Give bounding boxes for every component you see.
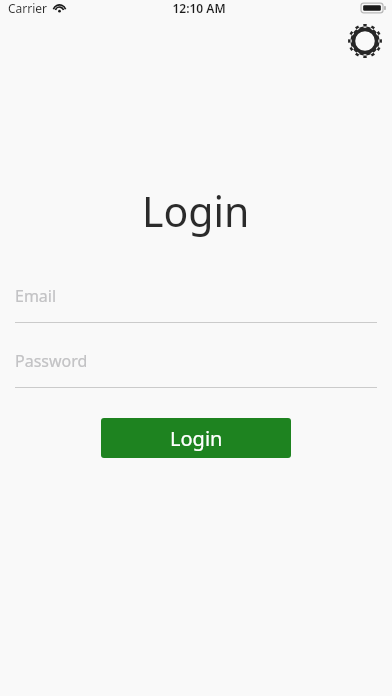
button[interactable]: Login [101, 418, 291, 458]
button[interactable]: Settings [345, 21, 385, 61]
staticText: Email [15, 285, 57, 307]
staticText: Login [170, 425, 223, 452]
staticText: Login [142, 183, 250, 239]
staticText: 12:10 AM [172, 0, 226, 16]
button[interactable]: Email [15, 283, 377, 323]
button[interactable]: Password [15, 348, 377, 388]
staticText: Password [15, 350, 88, 372]
staticText: Carrier [8, 0, 48, 16]
